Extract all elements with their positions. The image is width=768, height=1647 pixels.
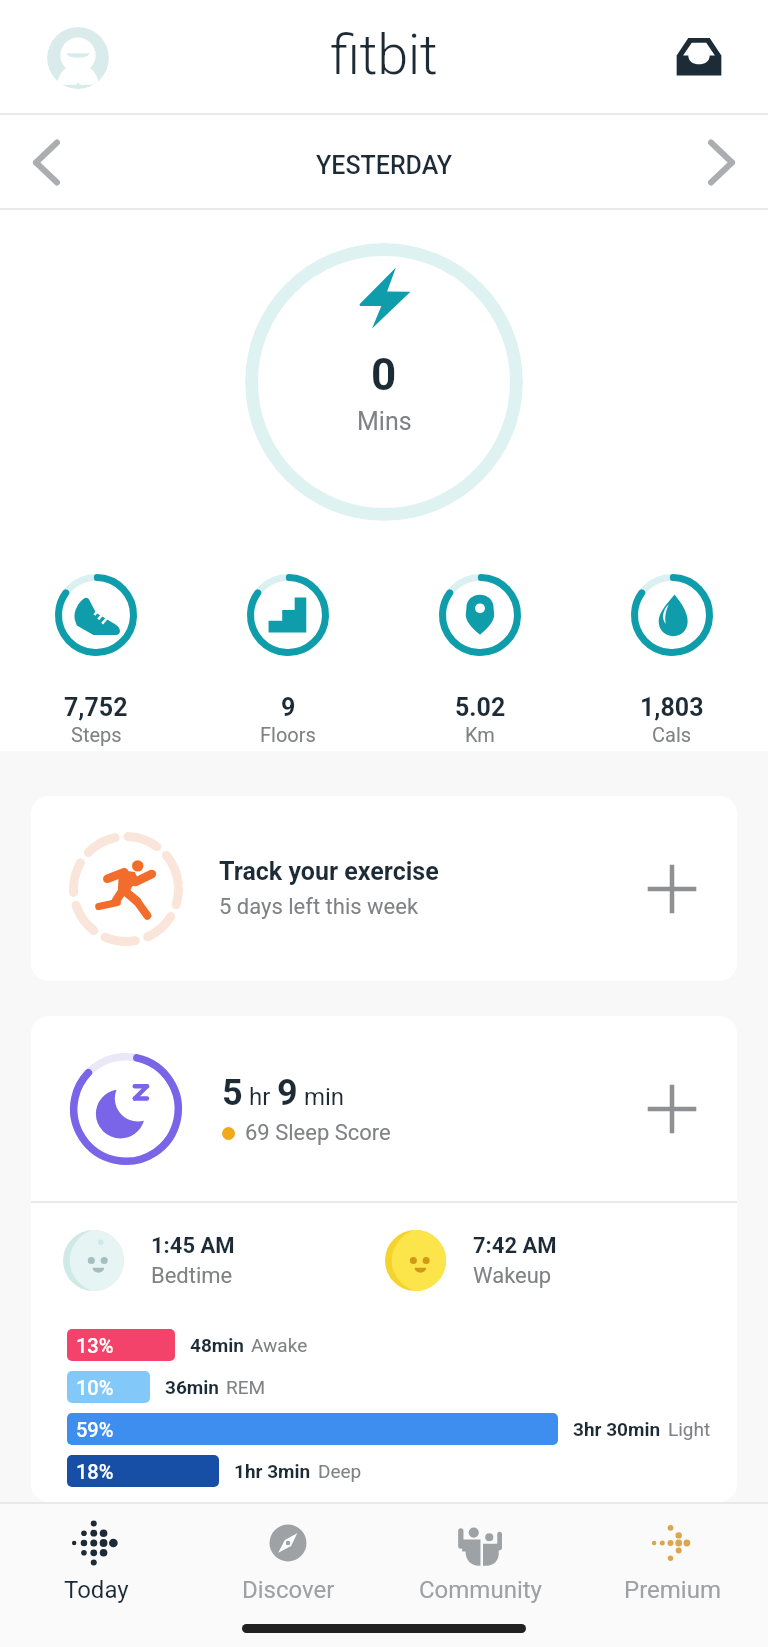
staticText: 7,752: [64, 693, 128, 722]
staticText: Km: [465, 723, 495, 746]
button[interactable]: Community: [384, 1504, 576, 1614]
button[interactable]: 0: [245, 243, 523, 521]
staticText: 5 days left this week: [219, 894, 419, 920]
staticText: 10%: [76, 1376, 114, 1399]
button[interactable]: Inbox: [670, 29, 728, 87]
staticText: 13%: [76, 1334, 114, 1357]
button[interactable]: Premium: [576, 1504, 768, 1614]
staticText: 36min: [165, 1376, 219, 1398]
staticText: Premium: [624, 1576, 721, 1604]
staticText: Steps: [71, 723, 122, 746]
staticText: Wakeup: [473, 1263, 552, 1289]
staticText: 59%: [76, 1418, 114, 1441]
staticText: 1,803: [640, 693, 704, 722]
button[interactable]: Previous day: [0, 115, 100, 210]
staticText: 7:42 AM: [473, 1233, 557, 1259]
staticText: Mins: [357, 407, 412, 436]
staticText: Awake: [251, 1334, 308, 1356]
staticText: 48min: [190, 1334, 244, 1356]
staticText: hr: [243, 1083, 277, 1111]
button[interactable]: 7,752: [0, 574, 192, 746]
staticText: 18%: [76, 1460, 114, 1483]
staticText: 5.02: [455, 693, 506, 722]
staticText: Discover: [242, 1576, 335, 1604]
staticText: 5: [222, 1072, 243, 1114]
staticText: Light: [668, 1418, 711, 1440]
staticText: YESTERDAY: [316, 151, 453, 180]
staticText: Cals: [652, 723, 692, 746]
staticText: Track your exercise: [219, 857, 439, 886]
staticText: fitbit: [330, 22, 438, 88]
staticText: Community: [419, 1576, 542, 1604]
staticText: 3hr 30min: [573, 1418, 661, 1440]
button[interactable]: Discover: [192, 1504, 384, 1614]
button[interactable]: Profile: [47, 27, 109, 89]
button[interactable]: 1,803: [576, 574, 768, 746]
staticText: 1:45 AM: [151, 1233, 235, 1259]
button[interactable]: Next day: [668, 115, 768, 210]
button[interactable]: 9: [192, 574, 384, 746]
staticText: REM: [226, 1376, 266, 1398]
staticText: 9: [277, 1072, 298, 1114]
staticText: 69 Sleep Score: [245, 1120, 391, 1146]
button[interactable]: 5.02: [384, 574, 576, 746]
staticText: Bedtime: [151, 1263, 233, 1289]
button[interactable]: Today: [0, 1504, 192, 1614]
staticText: min: [298, 1083, 345, 1111]
staticText: Floors: [260, 723, 316, 746]
button[interactable]: Add sleep: [645, 1082, 699, 1136]
staticText: 9: [281, 693, 296, 722]
button[interactable]: 5: [70, 1016, 699, 1201]
button[interactable]: Track your exercise: [31, 796, 737, 981]
staticText: 0: [371, 349, 397, 401]
staticText: 1hr 3min: [234, 1460, 311, 1482]
staticText: Deep: [318, 1460, 362, 1482]
staticText: Today: [64, 1576, 129, 1604]
button[interactable]: Add exercise: [645, 862, 699, 916]
